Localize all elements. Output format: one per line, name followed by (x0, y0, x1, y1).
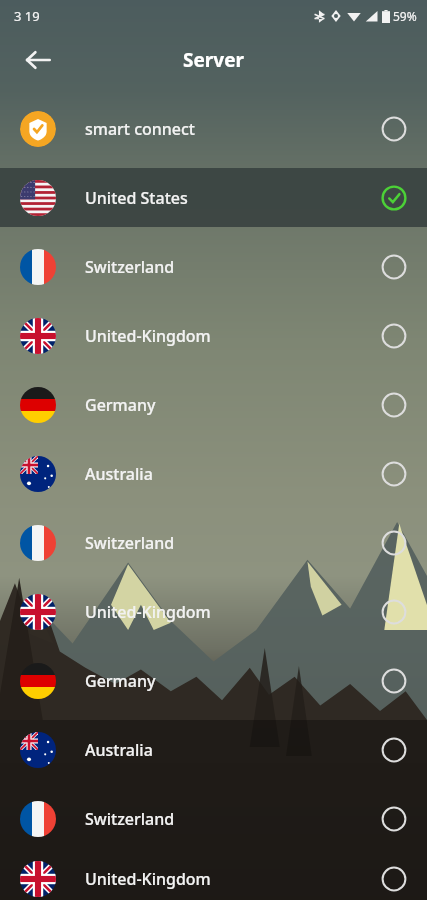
staticText: Australia (85, 463, 381, 485)
staticText: 3 19 (14, 7, 40, 25)
staticText: United-Kingdom (85, 325, 381, 347)
button[interactable]: Germany (0, 375, 427, 434)
staticText: Germany (85, 394, 381, 416)
staticText: United-Kingdom (85, 868, 381, 890)
button[interactable]: Back (14, 36, 62, 84)
staticText: Germany (85, 670, 381, 692)
button[interactable]: United-Kingdom (0, 306, 427, 365)
button[interactable]: Switzerland (0, 513, 427, 572)
button[interactable]: Germany (0, 651, 427, 710)
staticText: 59% (393, 8, 417, 24)
button[interactable]: Switzerland (0, 237, 427, 296)
button[interactable]: smart connect (0, 99, 427, 158)
staticText: smart connect (85, 118, 381, 140)
staticText: United States (85, 187, 381, 209)
staticText: Australia (85, 739, 381, 761)
button[interactable]: United States (0, 168, 427, 227)
staticText: Switzerland (85, 808, 381, 830)
button[interactable]: United-Kingdom (0, 858, 427, 900)
button[interactable]: United-Kingdom (0, 582, 427, 641)
button[interactable]: Australia (0, 444, 427, 503)
staticText: Switzerland (85, 532, 381, 554)
staticText: Switzerland (85, 256, 381, 278)
button[interactable]: Switzerland (0, 789, 427, 848)
staticText: United-Kingdom (85, 601, 381, 623)
staticText: Server (183, 47, 244, 73)
button[interactable]: Australia (0, 720, 427, 779)
